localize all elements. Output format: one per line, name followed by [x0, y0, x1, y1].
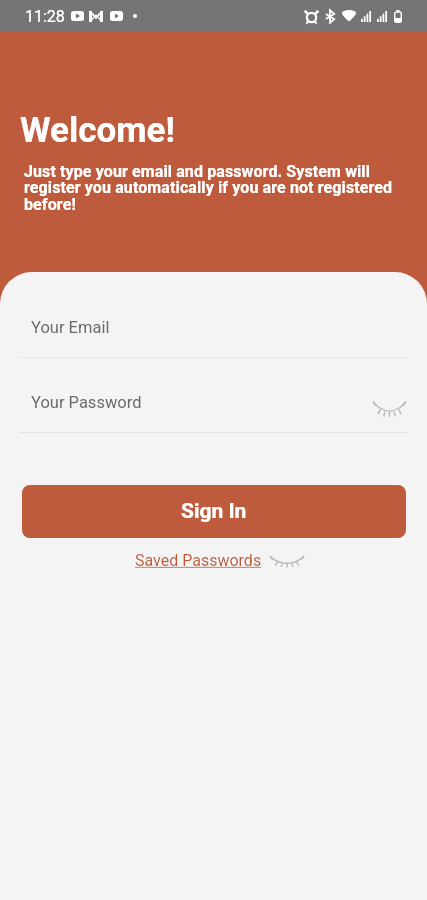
- button[interactable]: Show password: [373, 401, 406, 415]
- staticText: Welcome!: [20, 110, 175, 151]
- button[interactable]: Saved Passwords: [131, 548, 308, 573]
- staticText: Saved Passwords: [135, 551, 262, 570]
- staticText: Sign In: [181, 499, 247, 524]
- staticText: Your Password: [31, 393, 142, 412]
- staticText: Your Email: [31, 318, 110, 337]
- staticText: Just type your email and password. Syste…: [24, 162, 399, 214]
- button[interactable]: Your Email: [0, 302, 427, 357]
- staticText: 11:28: [25, 7, 65, 26]
- button[interactable]: Sign In: [22, 485, 406, 538]
- button[interactable]: Your Password: [0, 377, 427, 432]
